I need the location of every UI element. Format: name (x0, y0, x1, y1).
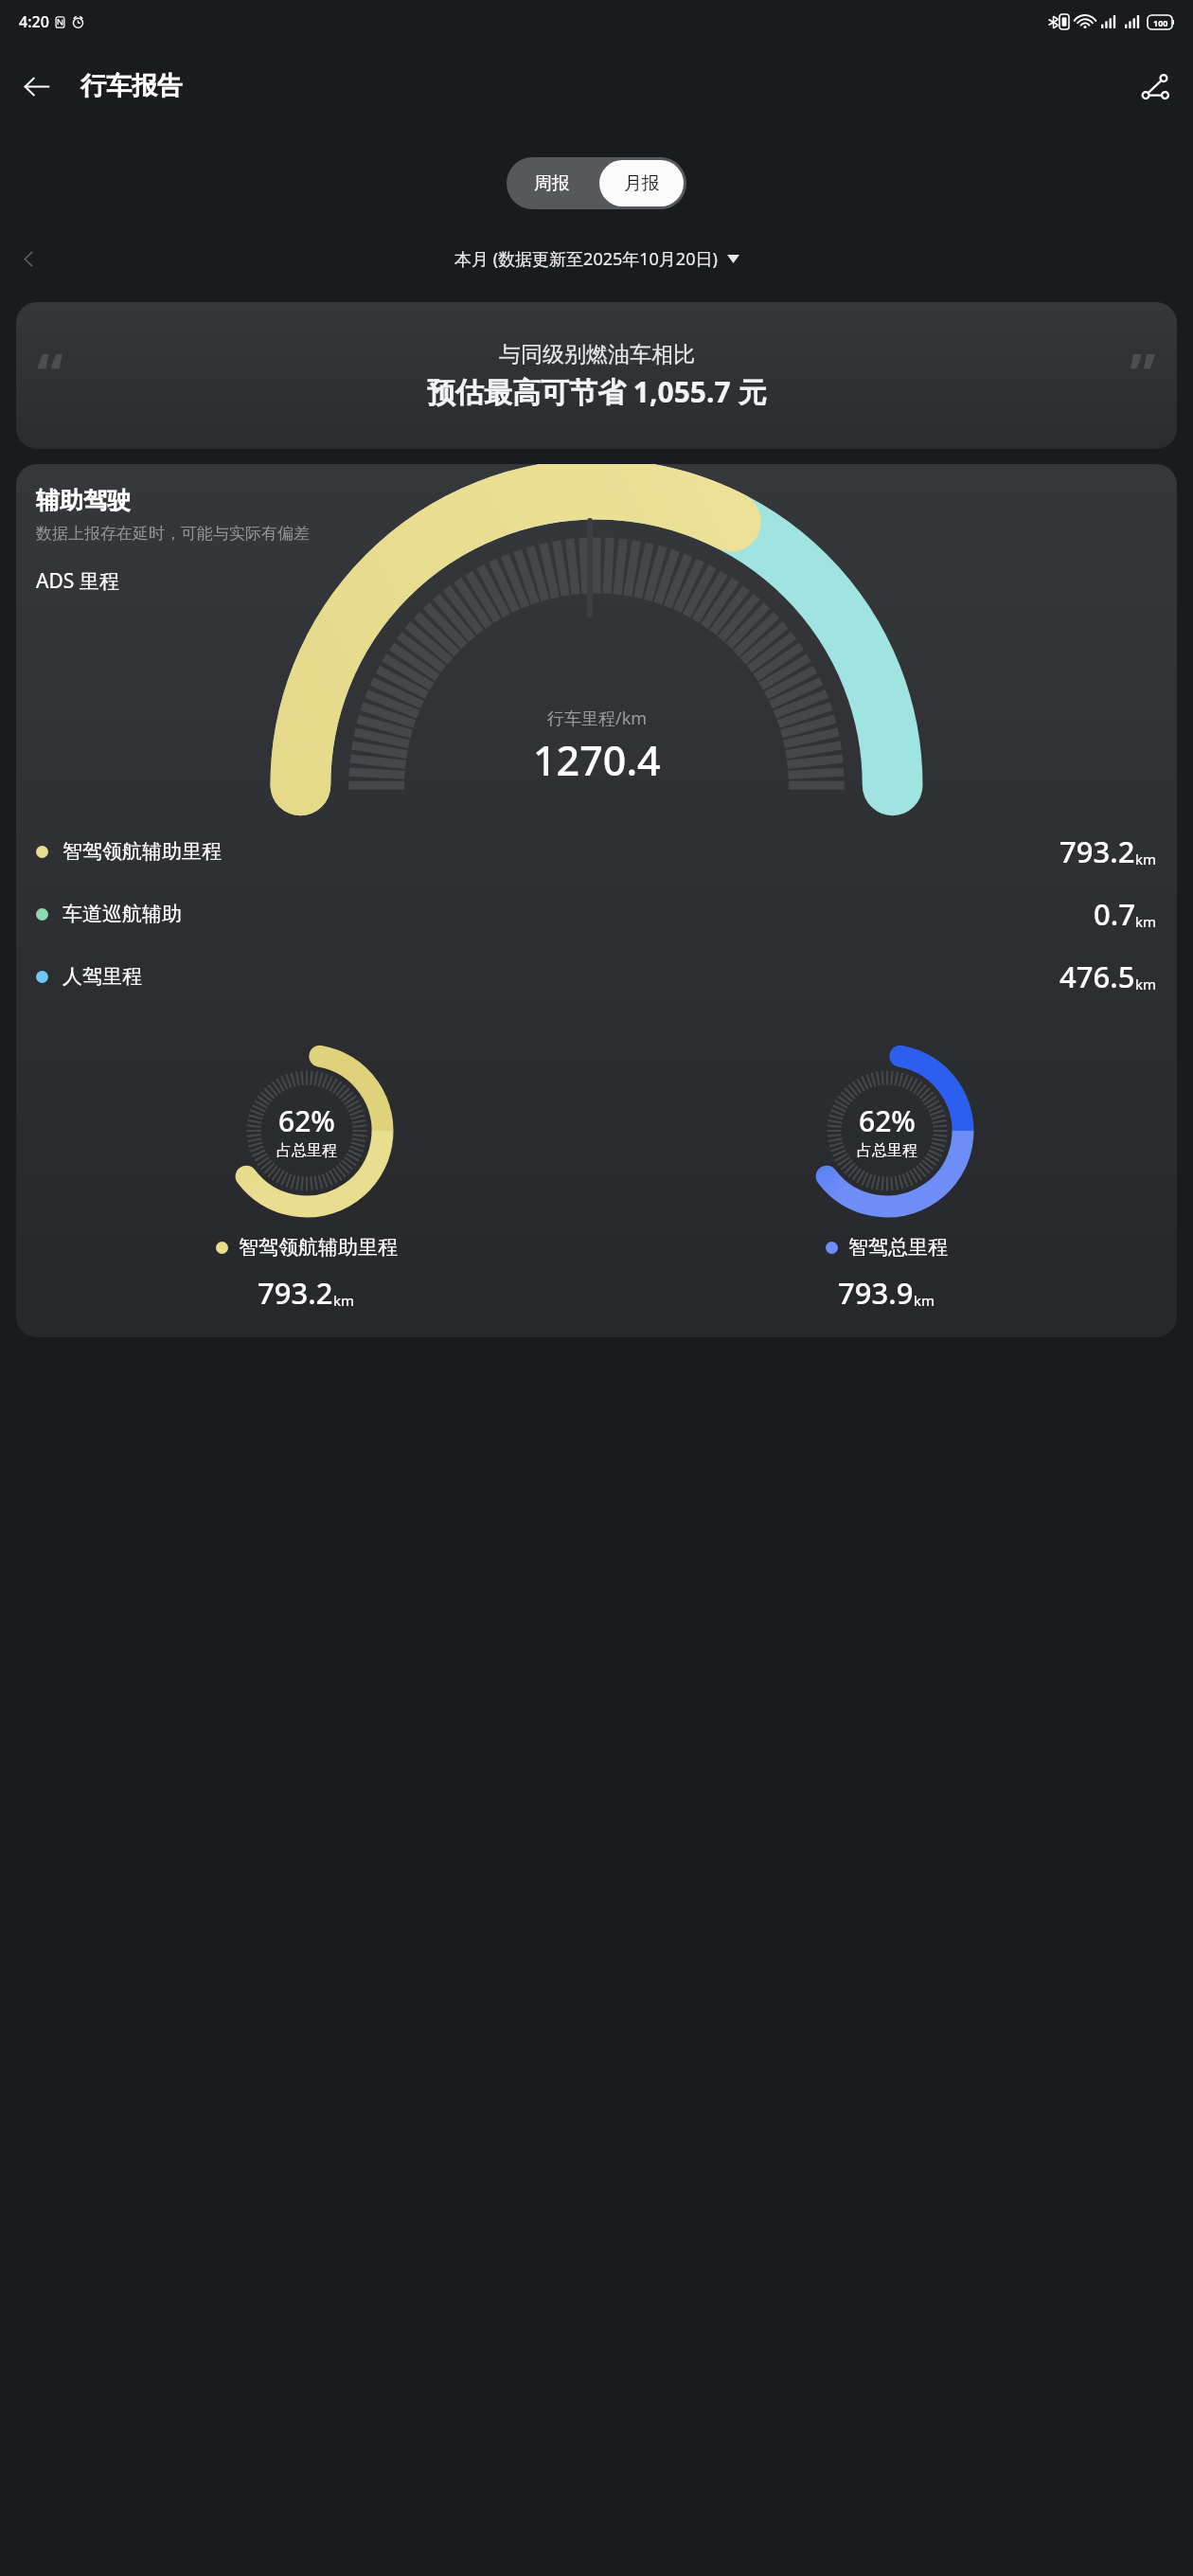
staticText: 793.2 (258, 1273, 333, 1313)
staticText: 智驾总里程 (848, 1235, 948, 1260)
button[interactable]: 月报 (599, 160, 684, 206)
staticText: 占总里程 (857, 1141, 917, 1160)
staticText: km (333, 1291, 355, 1310)
button[interactable]: 车道巡航辅助 (16, 883, 1177, 945)
button[interactable]: Back (9, 60, 62, 113)
staticText: 0.7 (1094, 894, 1135, 934)
button[interactable]: 62% (16, 1036, 596, 1313)
button[interactable]: “ (16, 302, 1177, 449)
staticText: 476.5 (1059, 957, 1135, 996)
staticText: km (1135, 975, 1157, 993)
button[interactable]: Previous (8, 238, 49, 279)
staticText: 车道巡航辅助 (62, 902, 182, 926)
staticText: 智驾领航辅助里程 (62, 839, 222, 864)
staticText: 辅助驾驶 (36, 486, 131, 515)
staticText: 行车报告 (80, 70, 183, 102)
staticText: 793.9 (838, 1273, 914, 1313)
button[interactable]: 本月 (数据更新至2025年10月20日) (449, 243, 745, 275)
staticText: 62% (278, 1101, 335, 1140)
staticText: km (1135, 912, 1157, 931)
staticText: 100 (1153, 17, 1168, 28)
staticText: 周报 (534, 172, 570, 195)
staticText: 智驾领航辅助里程 (239, 1235, 398, 1260)
staticText: 人驾里程 (62, 964, 142, 989)
button[interactable]: Share (1129, 60, 1182, 113)
staticText: 4:20 (19, 11, 49, 32)
staticText: km (914, 1291, 935, 1310)
staticText: “ (37, 334, 63, 414)
staticText: 数据上报存在延时，可能与实际有偏差 (36, 524, 310, 544)
staticText: 793.2 (1059, 832, 1135, 871)
button[interactable]: 62% (596, 1036, 1177, 1313)
staticText: 62% (859, 1101, 916, 1140)
staticText: 本月 (数据更新至2025年10月20日) (454, 247, 718, 271)
staticText: km (1135, 850, 1157, 868)
button[interactable]: 智驾领航辅助里程 (16, 820, 1177, 883)
staticText: 1270.4 (533, 732, 661, 788)
staticText: 预估最高可节省 1,055.7 元 (427, 372, 767, 411)
button[interactable]: 人驾里程 (16, 945, 1177, 1008)
staticText: 行车里程/km (547, 707, 648, 730)
button[interactable]: 周报 (507, 157, 596, 209)
staticText: 月报 (624, 172, 660, 195)
staticText: 与同级别燃油车相比 (499, 341, 695, 368)
staticText: ADS 里程 (36, 567, 119, 595)
staticText: ” (1130, 334, 1156, 414)
staticText: 占总里程 (276, 1141, 337, 1160)
